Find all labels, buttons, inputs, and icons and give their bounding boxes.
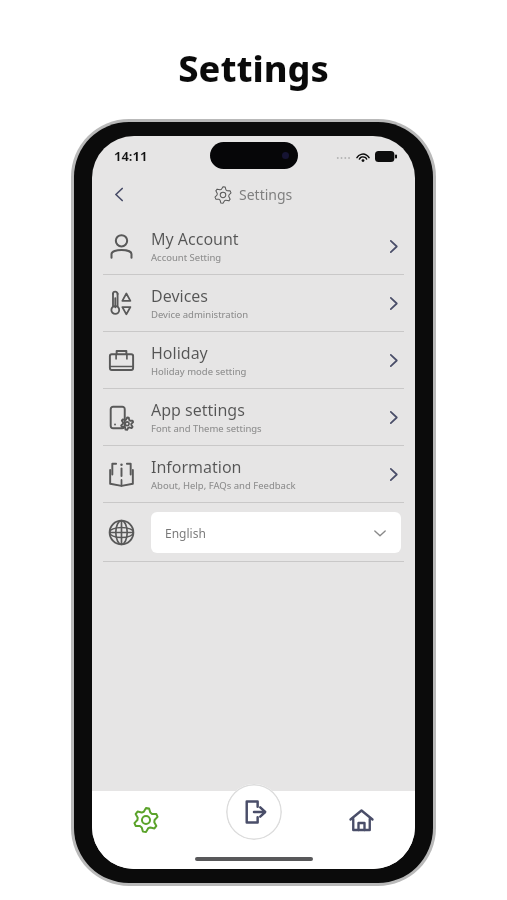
button[interactable]: Information [92, 446, 415, 502]
button[interactable]: My Account [92, 218, 415, 274]
staticText: Font and Theme settings [151, 422, 262, 435]
staticText: Account Setting [151, 251, 222, 264]
staticText: Device administration [151, 308, 249, 321]
staticText: Settings [239, 185, 293, 204]
staticText: 14:11 [114, 147, 148, 165]
staticText: My Account [151, 228, 239, 250]
staticText: Holiday [151, 342, 208, 364]
staticText: Settings [178, 44, 329, 93]
button[interactable]: Settings [92, 791, 199, 849]
button[interactable]: Home [307, 791, 415, 849]
button[interactable]: English [151, 512, 401, 553]
staticText: English [165, 525, 373, 541]
button[interactable]: Back [100, 176, 138, 212]
staticText: Devices [151, 285, 209, 307]
button[interactable]: Log out [226, 784, 282, 840]
staticText: About, Help, FAQs and Feedback [151, 479, 296, 492]
staticText: Information [151, 456, 242, 478]
button[interactable]: App settings [92, 389, 415, 445]
staticText: App settings [151, 399, 245, 421]
staticText: Holiday mode setting [151, 365, 247, 378]
button[interactable]: Devices [92, 275, 415, 331]
button[interactable]: Holiday [92, 332, 415, 388]
